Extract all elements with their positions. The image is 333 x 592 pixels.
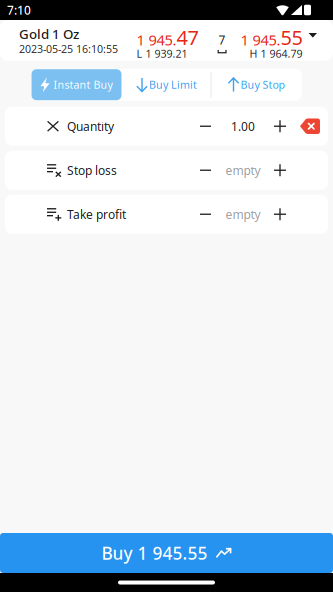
button[interactable]: Buy 1 945.55 <box>0 533 333 573</box>
staticText: L 1 939.21 <box>137 47 188 61</box>
staticText: 1.00 <box>231 118 255 134</box>
button[interactable]: Buy Limit <box>121 69 211 100</box>
button[interactable]: Instant Buy <box>31 69 121 100</box>
staticText: empty <box>225 206 260 222</box>
staticText: 1 945. <box>241 30 281 50</box>
button[interactable]: Increase Stop loss <box>266 153 294 187</box>
staticText: Stop loss <box>67 162 117 178</box>
staticText: Buy Limit <box>149 78 197 92</box>
staticText: Take profit <box>67 206 126 222</box>
button[interactable]: Decrease Quantity <box>194 110 220 143</box>
staticText: 1 945. <box>137 30 177 50</box>
staticText: Instant Buy <box>53 78 112 92</box>
staticText: 7 <box>219 32 226 48</box>
staticText: 55 <box>281 24 303 51</box>
staticText: 2023-05-25 16:10:55 <box>19 42 118 56</box>
button[interactable]: Decrease Take profit <box>194 198 220 231</box>
button[interactable]: Increase Quantity <box>266 109 294 143</box>
button[interactable]: Decrease Stop loss <box>194 154 220 187</box>
staticText: 47 <box>177 24 199 51</box>
staticText: H 1 964.79 <box>250 47 303 61</box>
staticText: Buy Stop <box>240 78 285 92</box>
staticText: Buy 1 945.55 <box>101 541 207 564</box>
staticText: Quantity <box>67 118 114 134</box>
staticText: Gold 1 Oz <box>19 25 79 43</box>
button[interactable]: Buy Stop <box>211 69 301 100</box>
button[interactable]: Clear Quantity <box>294 108 320 144</box>
staticText: empty <box>225 162 260 178</box>
staticText: 7:10 <box>7 2 31 18</box>
button[interactable]: Increase Take profit <box>266 197 294 231</box>
